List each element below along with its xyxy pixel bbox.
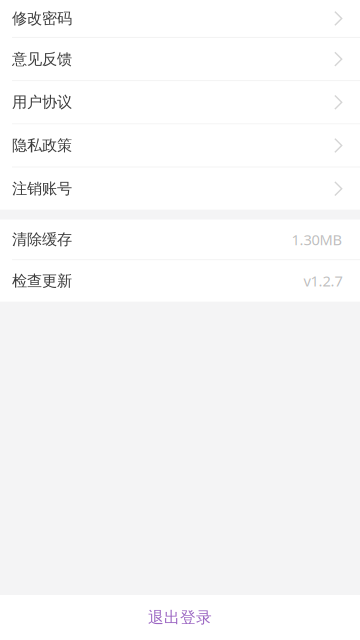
staticText: 隐私政策 xyxy=(12,136,72,155)
staticText: v1.2.7 xyxy=(303,271,342,291)
button[interactable]: 意见反馈 xyxy=(0,38,360,80)
button[interactable]: 清除缓存 xyxy=(0,220,360,259)
staticText: 用户协议 xyxy=(12,93,72,112)
staticText: 检查更新 xyxy=(12,271,72,290)
staticText: 修改密码 xyxy=(12,9,72,28)
button[interactable]: 修改密码 xyxy=(0,0,360,37)
staticText: 1.30MB xyxy=(291,229,342,249)
button[interactable]: 退出登录 xyxy=(0,595,360,640)
button[interactable]: 检查更新 xyxy=(0,260,360,301)
staticText: 清除缓存 xyxy=(12,230,72,249)
staticText: 意见反馈 xyxy=(12,49,72,69)
button[interactable]: 用户协议 xyxy=(0,81,360,123)
button[interactable]: 隐私政策 xyxy=(0,124,360,166)
staticText: 注销账号 xyxy=(12,179,72,198)
staticText: 退出登录 xyxy=(148,608,212,627)
button[interactable]: 注销账号 xyxy=(0,168,360,210)
